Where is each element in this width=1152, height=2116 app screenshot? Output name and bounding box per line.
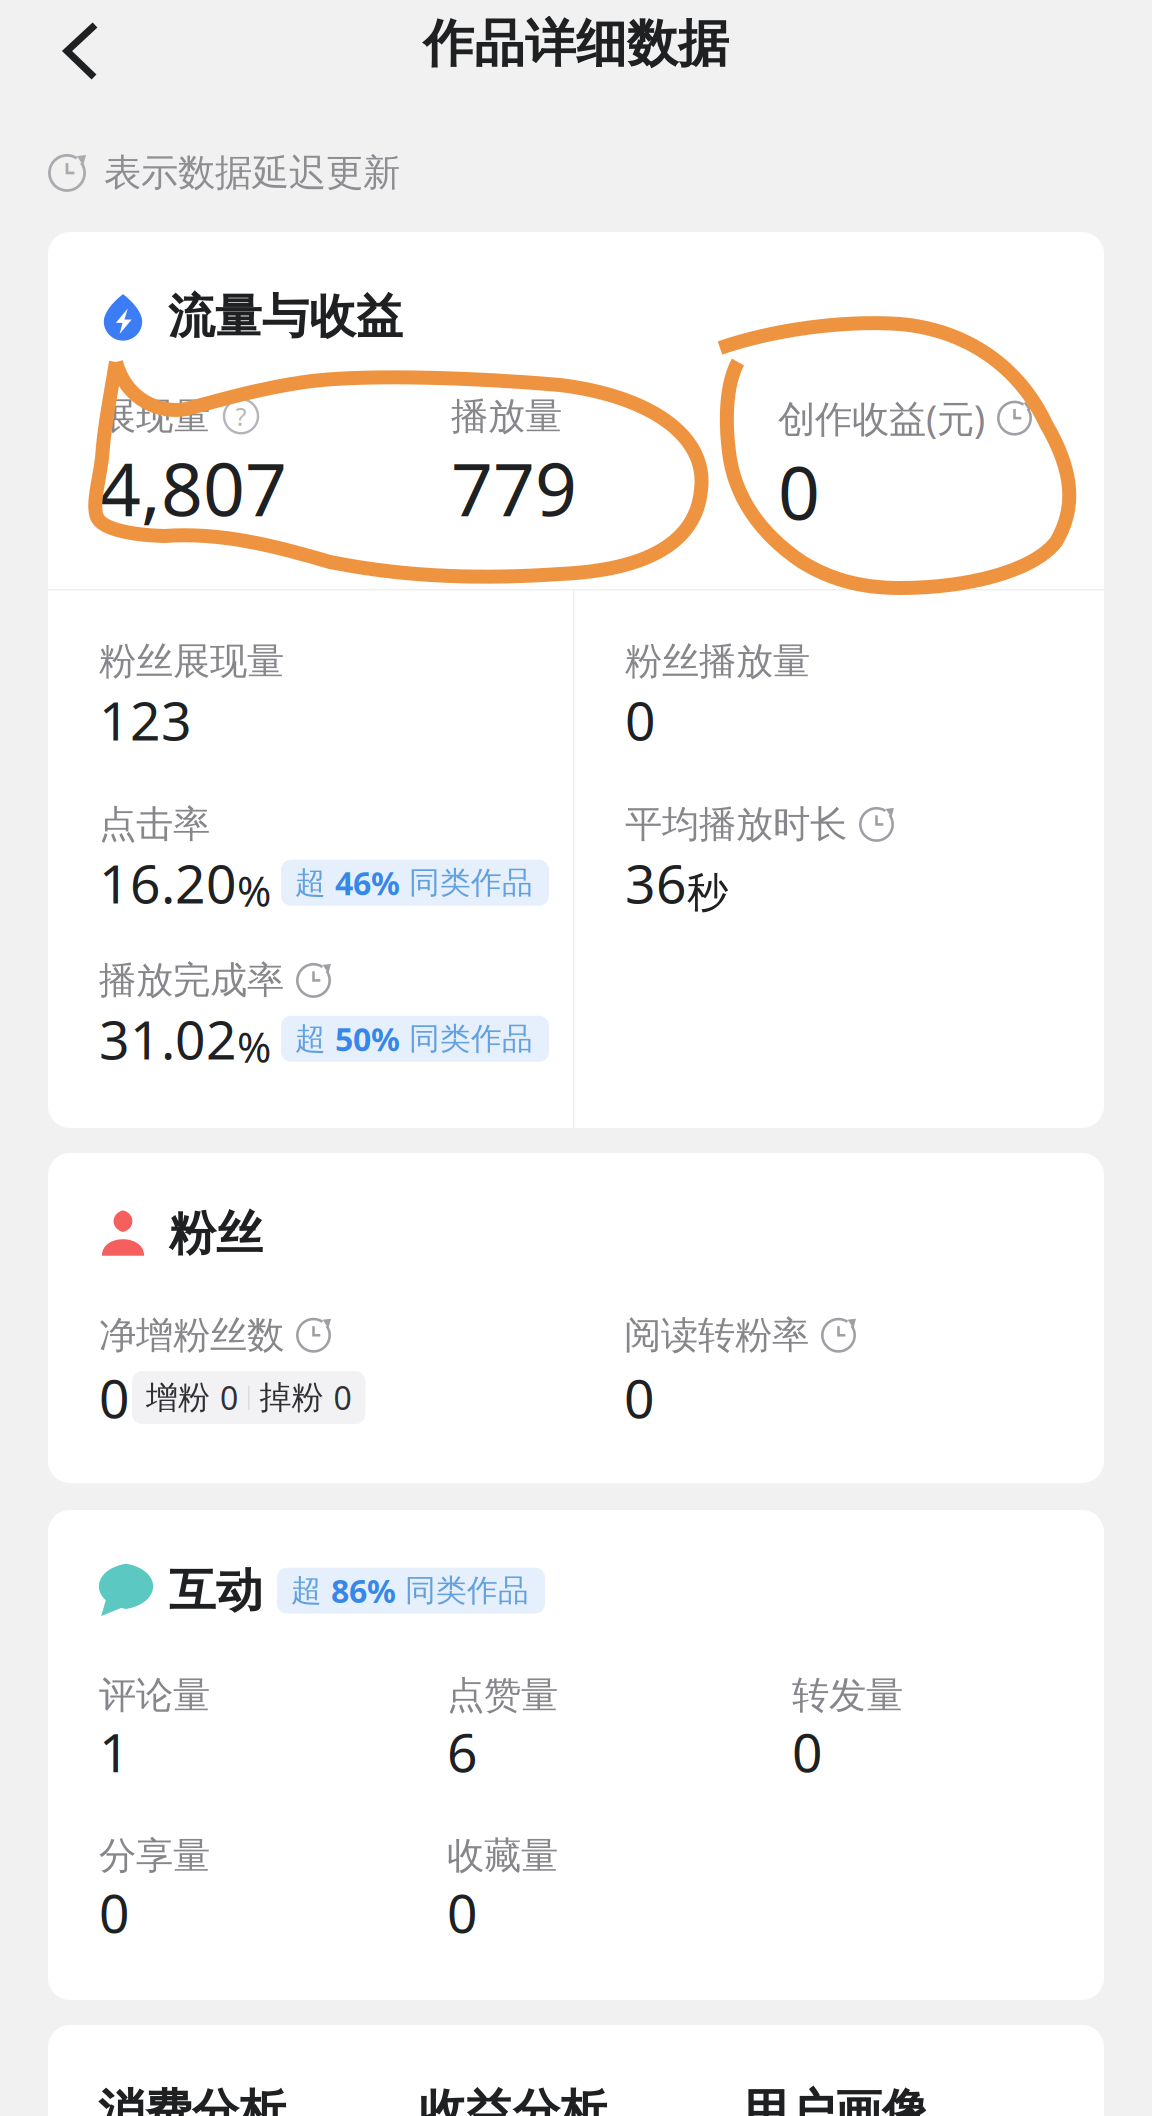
staticText: 增粉	[146, 1378, 210, 1417]
button[interactable]: 收益分析	[419, 2083, 741, 2116]
staticText: 粉丝展现量	[99, 638, 284, 684]
staticText: 超	[295, 1020, 326, 1058]
staticText: 播放完成率	[99, 957, 284, 1003]
staticText: 分享量	[99, 1833, 210, 1879]
staticText: 播放量	[451, 393, 562, 439]
staticText: 86%	[331, 1569, 396, 1612]
staticText: 0	[625, 684, 656, 755]
staticText: 收益分析	[419, 2083, 607, 2116]
staticText: 16.20	[99, 847, 237, 918]
staticText: 收藏量	[447, 1833, 558, 1879]
button[interactable]: 关于展现量	[224, 399, 258, 433]
staticText: 掉粉	[259, 1378, 323, 1417]
button[interactable]: Back	[0, 2, 130, 86]
staticText: 0	[333, 1376, 351, 1419]
staticText: 用户画像	[741, 2083, 929, 2116]
staticText: %	[237, 863, 271, 918]
staticText: 36	[625, 847, 687, 918]
staticText: 31.02	[99, 1003, 237, 1074]
staticText: 阅读转粉率	[624, 1312, 809, 1358]
staticText: 同类作品	[409, 1020, 533, 1058]
staticText: 超	[295, 864, 326, 902]
staticText: 粉丝	[169, 1205, 263, 1262]
staticText: 0	[624, 1362, 655, 1433]
staticText: 同类作品	[409, 864, 533, 902]
staticText: %	[237, 1019, 271, 1074]
staticText: 互动	[169, 1562, 263, 1619]
button[interactable]: 消费分析	[98, 2083, 419, 2116]
button[interactable]: 数据延迟更新说明	[997, 401, 1032, 436]
staticText: 粉丝播放量	[625, 638, 810, 684]
staticText: 点击率	[99, 801, 210, 847]
button[interactable]: 数据延迟更新说明	[296, 963, 331, 998]
staticText: 秒	[687, 867, 728, 918]
staticText: 0	[220, 1376, 238, 1419]
staticText: 0	[792, 1716, 823, 1787]
button[interactable]: 表示数据延迟更新	[0, 138, 424, 208]
staticText: 表示数据延迟更新	[104, 150, 400, 196]
button[interactable]: 数据延迟更新说明	[859, 807, 894, 842]
staticText: 0	[778, 443, 820, 540]
staticText: 消费分析	[98, 2083, 286, 2116]
button[interactable]: 数据延迟更新说明	[821, 1318, 856, 1353]
staticText: 转发量	[792, 1672, 903, 1718]
staticText: 779	[451, 439, 577, 537]
staticText: 6	[447, 1716, 478, 1787]
button[interactable]: 数据延迟更新说明	[296, 1318, 331, 1353]
staticText: 46%	[335, 861, 400, 904]
staticText: 0	[99, 1362, 130, 1433]
staticText: 0	[99, 1877, 130, 1948]
staticText: 点赞量	[447, 1672, 558, 1718]
staticText: 1	[99, 1716, 130, 1787]
button[interactable]: 用户画像	[741, 2083, 991, 2116]
staticText: 展现量	[99, 393, 210, 439]
staticText: 4,807	[99, 439, 287, 537]
staticText: 0	[447, 1877, 478, 1948]
staticText: 净增粉丝数	[99, 1312, 284, 1358]
staticText: 123	[99, 684, 192, 755]
staticText: 平均播放时长	[625, 801, 847, 847]
staticText: 同类作品	[405, 1572, 529, 1609]
staticText: 50%	[335, 1017, 400, 1060]
staticText: 流量与收益	[168, 288, 403, 345]
staticText: 超	[291, 1572, 322, 1609]
staticText: 作品详细数据	[423, 13, 729, 75]
staticText: ?	[235, 399, 246, 433]
staticText: 创作收益(元)	[778, 393, 985, 443]
staticText: 评论量	[99, 1672, 210, 1718]
